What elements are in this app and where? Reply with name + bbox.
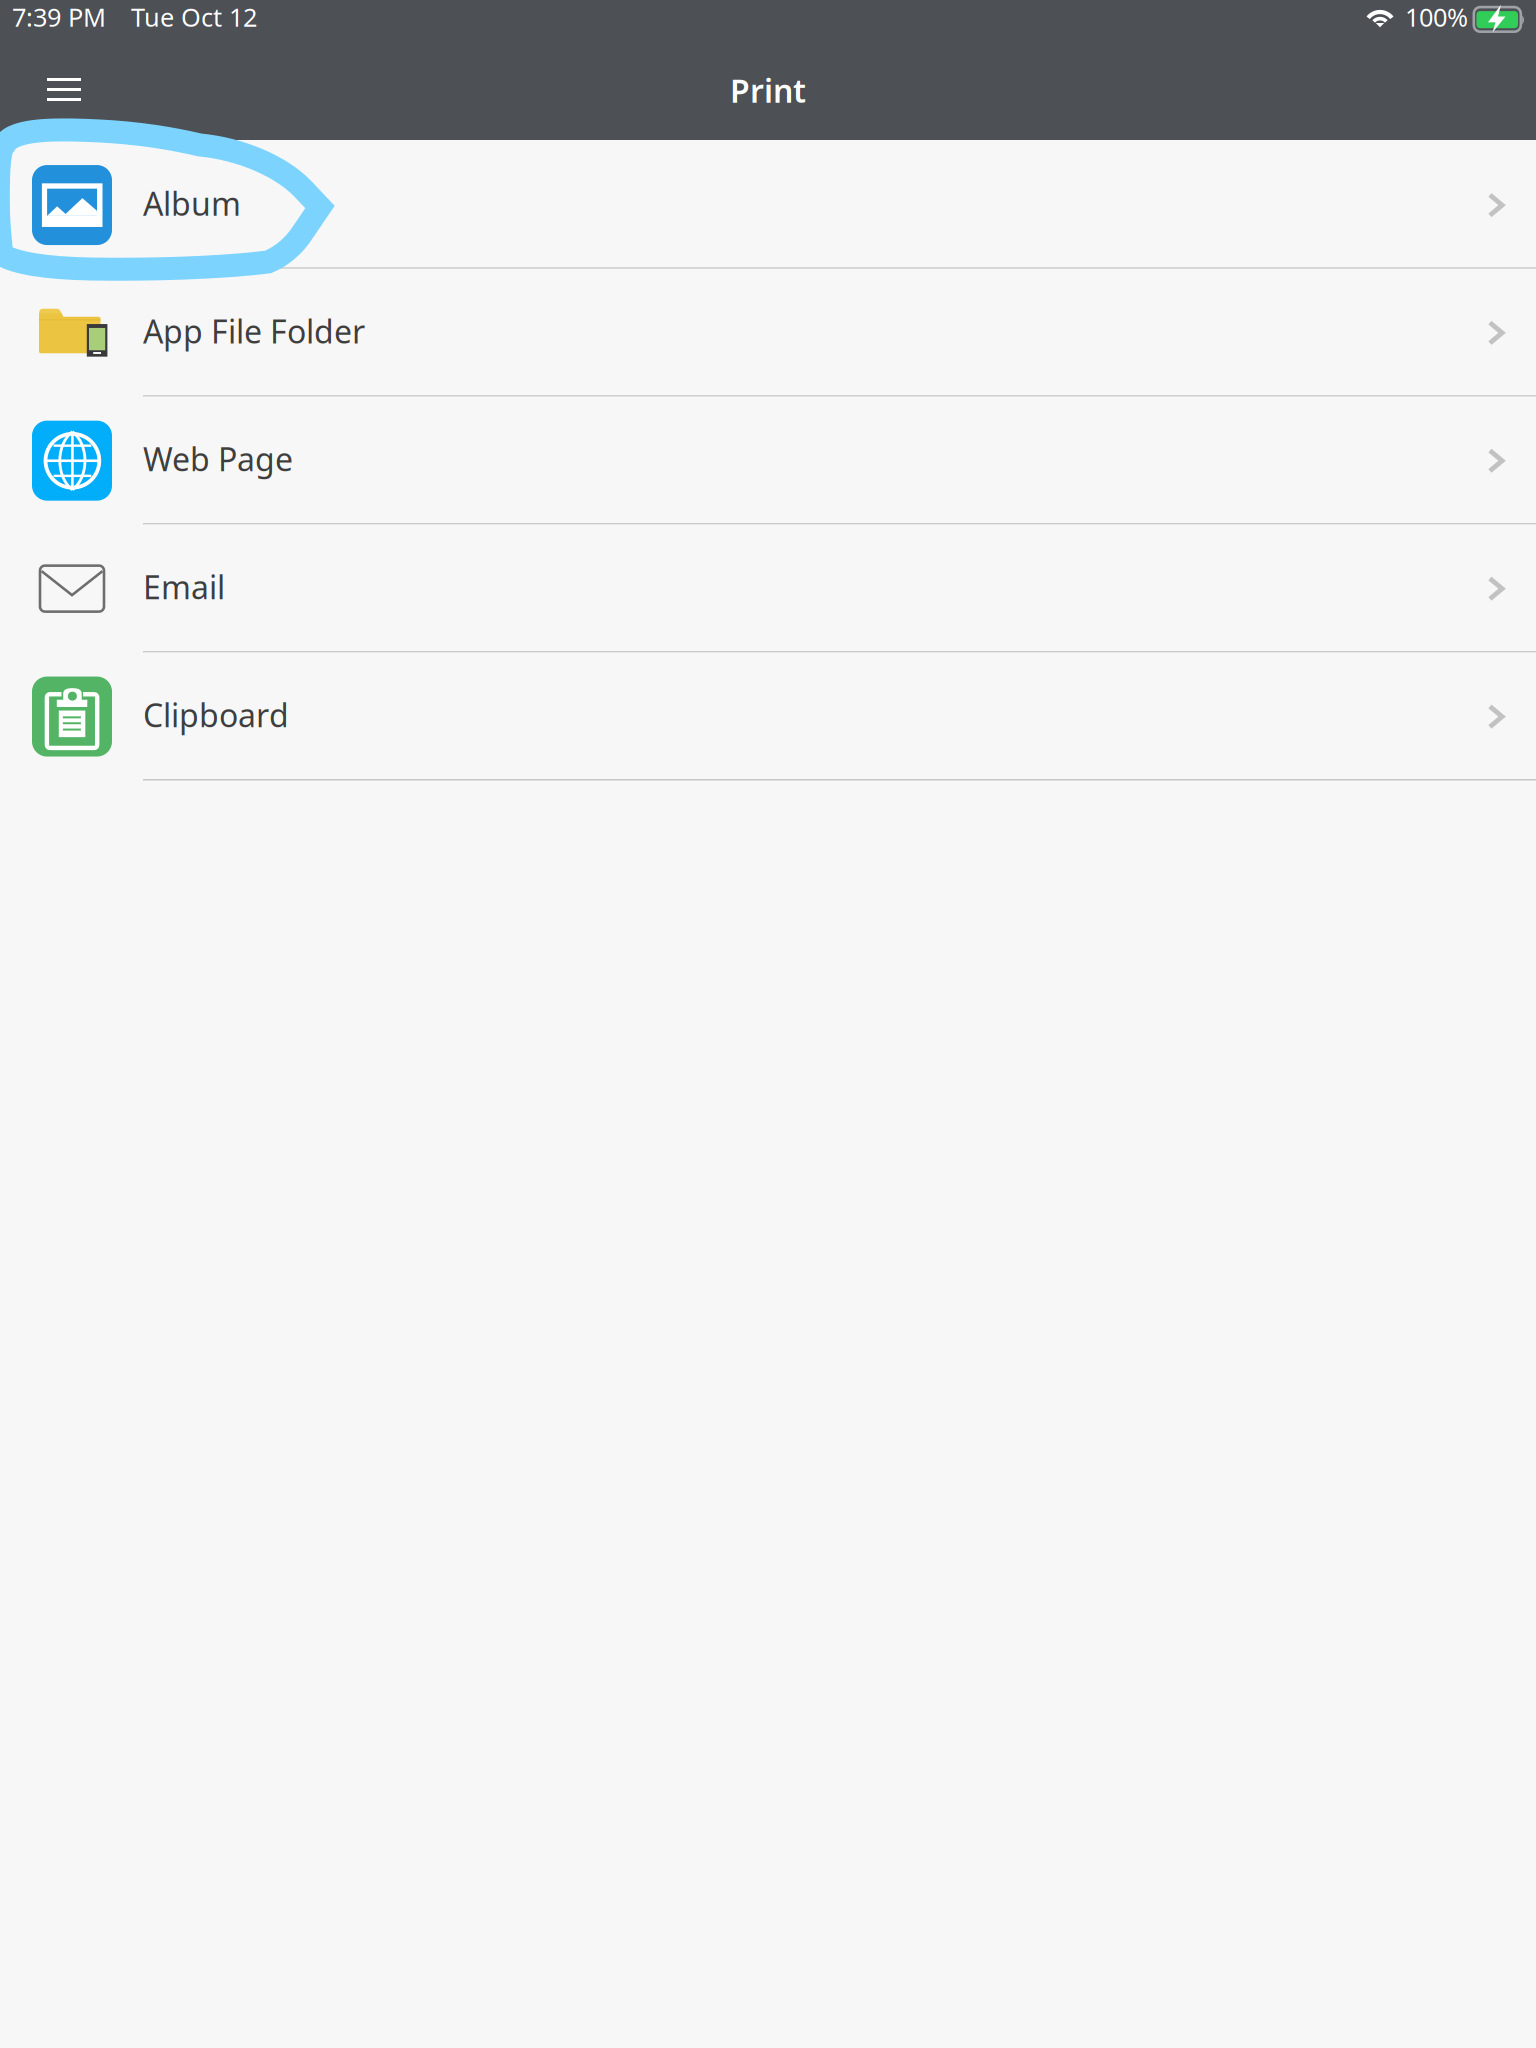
staticText: App File Folder — [143, 310, 365, 352]
staticText: 100% — [1405, 0, 1468, 34]
button[interactable]: Web Page — [0, 397, 1536, 525]
button[interactable]: Menu — [34, 62, 110, 124]
staticText: Web Page — [143, 438, 293, 480]
staticText: 7:39 PM — [12, 0, 106, 34]
staticText: Print — [730, 69, 806, 111]
button[interactable]: Email — [0, 525, 1536, 653]
staticText: Clipboard — [143, 694, 289, 736]
button[interactable]: Album — [0, 141, 1536, 269]
staticText: Tue Oct 12 — [131, 0, 257, 34]
button[interactable]: App File Folder — [0, 269, 1536, 397]
staticText: Email — [143, 566, 225, 608]
button[interactable]: Clipboard — [0, 653, 1536, 780]
staticText: Album — [143, 182, 241, 225]
